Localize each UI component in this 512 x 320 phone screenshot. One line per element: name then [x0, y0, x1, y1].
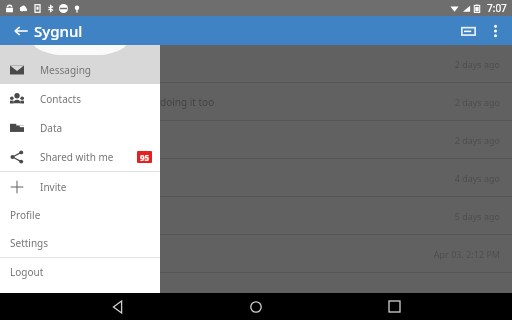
staticText: Apr 03, 2:12 PM — [433, 248, 500, 260]
staticText: Settings — [10, 236, 49, 250]
button[interactable]: Messaging — [0, 55, 160, 84]
button[interactable]: Recents — [374, 293, 414, 320]
staticText: Logout — [10, 265, 44, 279]
button[interactable]: Contacts — [0, 84, 160, 113]
button[interactable]: Profile — [0, 201, 160, 229]
button[interactable]: 5 days ago — [0, 197, 512, 235]
staticText: Data — [40, 121, 63, 135]
button[interactable]: Logout — [0, 258, 160, 286]
button[interactable]: 4 days ago — [0, 159, 512, 197]
staticText: Profile — [10, 208, 41, 222]
button[interactable]: Messages — [454, 17, 482, 45]
staticText: Messaging — [40, 63, 91, 77]
button[interactable]: More options — [482, 18, 508, 44]
staticText: doing it too — [160, 95, 215, 109]
button[interactable]: Settings — [0, 229, 160, 257]
staticText: 2 days ago — [454, 58, 500, 70]
staticText: 4 days ago — [454, 172, 500, 184]
button[interactable]: 2 days ago — [0, 45, 512, 83]
staticText: Shared with me — [40, 150, 114, 164]
button[interactable]: Shared with me — [0, 142, 160, 171]
button[interactable]: 2 days ago — [0, 121, 512, 159]
button[interactable]: Back — [6, 16, 36, 45]
staticText: Invite — [40, 180, 67, 194]
staticText: 2 days ago — [454, 96, 500, 108]
staticText: 95 — [140, 152, 150, 163]
button[interactable]: doing it too — [0, 83, 512, 121]
staticText: Sygnul — [34, 21, 83, 41]
staticText: 2 days ago — [454, 134, 500, 146]
button[interactable]: Back — [98, 293, 138, 320]
button[interactable]: Home — [236, 293, 276, 320]
button[interactable]: Invite — [0, 172, 160, 201]
staticText: Contacts — [40, 92, 81, 106]
staticText: 5 days ago — [454, 210, 500, 222]
button[interactable]: Apr 03, 2:12 PM — [0, 235, 512, 273]
button[interactable]: Data — [0, 113, 160, 142]
staticText: 7:07 — [487, 1, 507, 15]
